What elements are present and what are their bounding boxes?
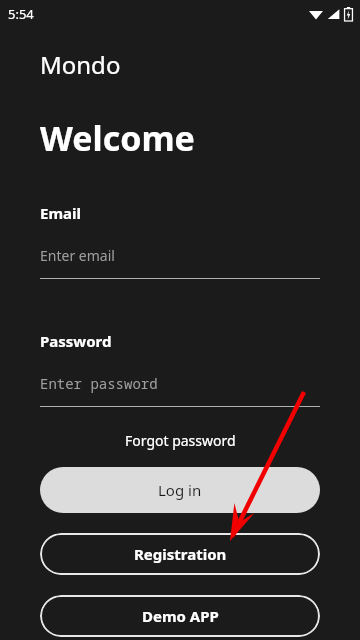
staticText: Welcome [40, 115, 195, 161]
button[interactable]: Email input [40, 246, 320, 279]
staticText: Demo APP [142, 606, 219, 626]
staticText: Enter password [40, 374, 158, 393]
staticText: Password [40, 331, 112, 351]
staticText: Forgot password [125, 431, 236, 450]
staticText: Mondo [40, 48, 121, 81]
staticText: Email [40, 203, 81, 223]
staticText: Enter email [40, 246, 115, 265]
button[interactable]: Demo APP [40, 595, 320, 637]
staticText: Registration [134, 544, 227, 564]
button[interactable]: Password input [40, 374, 320, 407]
button[interactable]: Forgot password [0, 425, 360, 456]
staticText: 5:54 [8, 5, 34, 23]
staticText: Log in [158, 480, 202, 500]
button[interactable]: Registration [40, 533, 320, 575]
button[interactable]: Log in [40, 467, 320, 513]
